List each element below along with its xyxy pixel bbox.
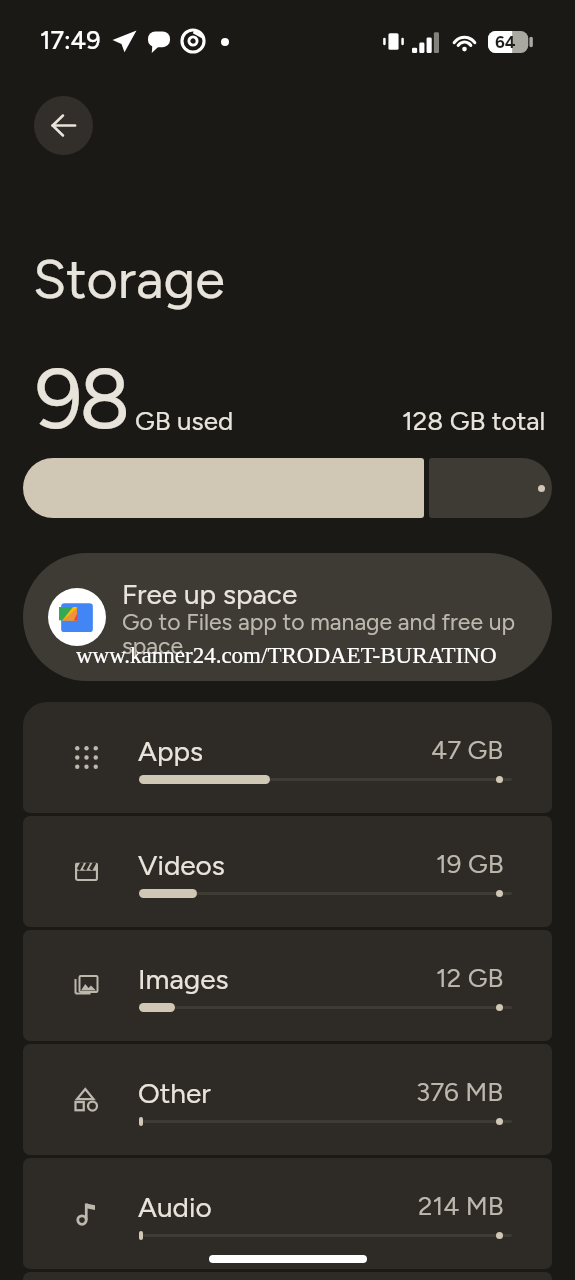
staticText: 47 GB [431, 734, 504, 765]
staticText: 376 MB [416, 1076, 504, 1107]
button[interactable]: Back [34, 96, 93, 155]
staticText: www.kanner24.com/TRODAET-BURATINO [76, 643, 497, 668]
staticText: Go to Files app to manage and free up sp… [122, 608, 518, 660]
button[interactable]: Audio [23, 1158, 552, 1269]
button[interactable]: Videos [23, 816, 552, 927]
staticText: 19 GB [436, 848, 504, 879]
staticText: 12 GB [436, 962, 504, 993]
staticText: 214 MB [418, 1190, 504, 1221]
staticText: Other [138, 1076, 211, 1110]
staticText: Images [138, 962, 229, 996]
staticText: Free up space [122, 577, 298, 611]
staticText: 64 [495, 32, 516, 52]
button[interactable]: Other [23, 1044, 552, 1155]
staticText: GB used [135, 405, 234, 436]
button[interactable]: Images [23, 930, 552, 1041]
staticText: Apps [138, 734, 204, 768]
staticText: Audio [138, 1190, 212, 1224]
staticText: 98 [35, 348, 128, 449]
staticText: Videos [138, 848, 225, 882]
staticText: Storage [33, 247, 225, 312]
button[interactable]: Apps [23, 702, 552, 813]
staticText: 17:49 [40, 25, 101, 55]
button[interactable]: Free up space [23, 553, 552, 681]
staticText: 128 GB total [402, 405, 546, 436]
